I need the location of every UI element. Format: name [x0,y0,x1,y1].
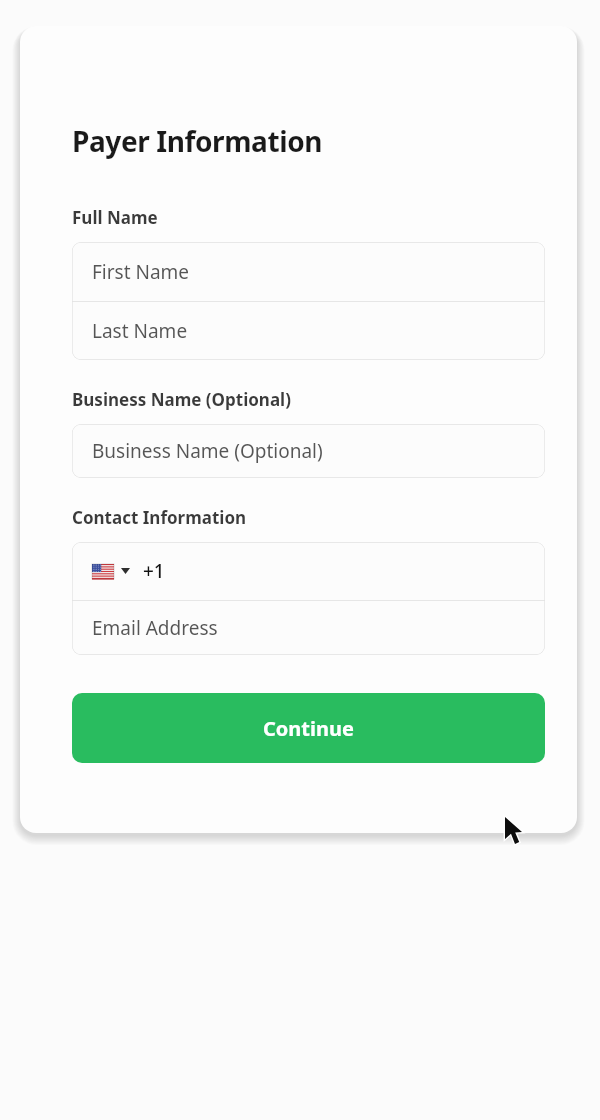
staticText: Last Name [92,318,188,344]
staticText: Email Address [92,615,218,641]
button[interactable]: First Name [72,242,545,301]
button[interactable]: Business Name (Optional) [72,424,545,478]
staticText: Contact Information [72,506,247,529]
staticText: Payer Information [72,122,323,160]
button[interactable]: Select country calling code [72,542,545,600]
staticText: Continue [263,715,354,742]
button[interactable]: Email Address [72,601,545,655]
staticText: First Name [92,259,190,285]
button[interactable]: Last Name [72,302,545,360]
button[interactable]: Continue [72,693,545,763]
staticText: Business Name (Optional) [92,438,323,464]
staticText: Business Name (Optional) [72,388,291,411]
staticText: +1 [143,558,165,584]
staticText: Full Name [72,206,158,229]
